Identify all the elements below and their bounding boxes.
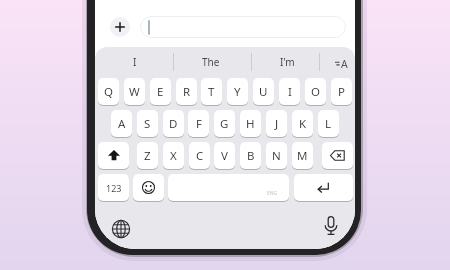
button[interactable]: R [176,78,197,105]
button[interactable]: N [266,142,287,169]
staticText: N [272,148,281,164]
button[interactable]: S [137,110,158,137]
staticText: R [183,84,191,100]
staticText: The [202,55,220,69]
staticText: B [247,148,255,164]
button[interactable]: T [201,78,222,105]
staticText: H [246,116,255,132]
button[interactable]: ENG [168,174,289,201]
button[interactable]: A [111,110,132,137]
staticText: G [220,116,229,132]
staticText: O [311,84,320,100]
button[interactable]: H [240,110,261,137]
button[interactable]: X [163,142,184,169]
staticText: Y [234,84,241,100]
button[interactable]: Z [137,142,158,169]
button[interactable] [133,174,164,201]
button[interactable]: The [181,47,241,77]
staticText: C [196,148,204,164]
button[interactable]: K [292,110,313,137]
staticText: 123 [106,182,122,194]
staticText: I [133,55,137,69]
button[interactable]: E [150,78,171,105]
button[interactable]: Y [227,78,248,105]
staticText: U [259,84,268,100]
button[interactable] [322,142,353,169]
staticText: Q [104,84,113,100]
button[interactable] [294,174,353,201]
staticText: A [341,57,348,71]
button[interactable]: U [253,78,274,105]
staticText: T [208,84,215,100]
button[interactable]: J [266,110,287,137]
staticText: V [221,148,228,164]
staticText: X [170,148,177,164]
button[interactable]: W [124,78,145,105]
staticText: J [275,116,279,132]
staticText: L [325,116,332,132]
staticText: ENG [267,190,278,197]
button[interactable]: I'm [257,47,317,77]
staticText: E [157,84,164,100]
button[interactable] [110,17,130,37]
staticText: I [288,84,292,100]
button[interactable]: 123 [98,174,129,201]
button[interactable]: I [105,47,165,77]
button[interactable]: L [318,110,339,137]
staticText: P [338,84,345,100]
button[interactable]: V [214,142,235,169]
staticText: M [297,148,308,164]
button[interactable]: D [163,110,184,137]
staticText: W [129,84,140,100]
button[interactable] [98,142,129,169]
button[interactable]: C [189,142,210,169]
staticText: Z [144,148,151,164]
button[interactable] [111,219,131,239]
staticText: S [144,116,151,132]
button[interactable] [140,16,346,38]
button[interactable]: P [331,78,352,105]
button[interactable]: B [240,142,261,169]
button[interactable]: F [188,110,209,137]
staticText: D [169,116,178,132]
staticText: F [196,116,202,132]
button[interactable]: Q [98,78,119,105]
button[interactable] [323,216,339,236]
staticText: K [299,116,307,132]
staticText: I'm [280,55,295,69]
button[interactable]: A [331,55,353,73]
staticText: A [118,116,126,132]
button[interactable]: O [305,78,326,105]
button[interactable]: M [292,142,313,169]
button[interactable]: G [214,110,235,137]
button[interactable]: I [279,78,300,105]
